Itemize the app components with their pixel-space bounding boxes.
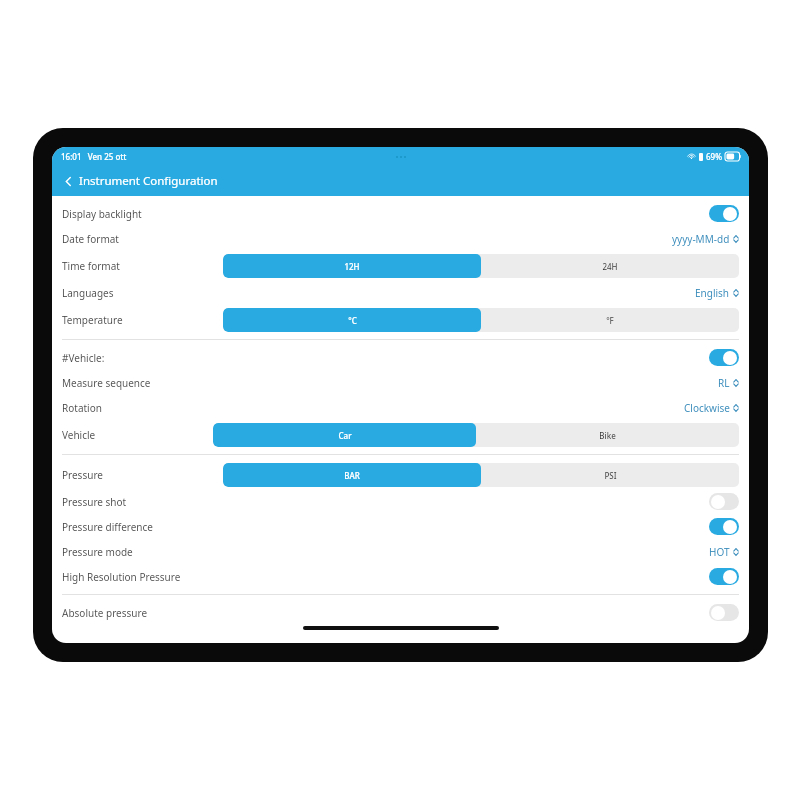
staticText: Measure sequence <box>62 376 151 390</box>
button[interactable]: Pressure shot <box>52 489 749 514</box>
staticText: Absolute pressure <box>62 606 148 620</box>
staticText: HOT <box>709 545 730 559</box>
staticText: Rotation <box>62 401 102 415</box>
button[interactable]: On <box>709 518 739 535</box>
button[interactable]: On <box>709 349 739 366</box>
button[interactable]: Bike <box>476 423 739 447</box>
button[interactable]: BAR <box>223 463 481 487</box>
staticText: °F <box>606 315 614 326</box>
button[interactable]: 12H <box>223 254 481 278</box>
staticText: Clockwise <box>684 401 730 415</box>
button[interactable]: On <box>709 205 739 222</box>
staticText: Pressure shot <box>62 495 127 509</box>
button[interactable]: Pressure mode <box>52 539 749 564</box>
button[interactable]: Car <box>213 423 476 447</box>
staticText: Instrument Configuration <box>79 173 218 189</box>
button[interactable]: Languages <box>52 280 749 305</box>
button[interactable]: Measure sequence <box>52 370 749 395</box>
button[interactable]: °C <box>223 308 481 332</box>
button[interactable]: Absolute pressure <box>52 600 749 625</box>
button[interactable]: High Resolution Pressure <box>52 564 749 589</box>
staticText: Pressure difference <box>62 520 153 534</box>
staticText: yyyy-MM-dd <box>672 232 730 246</box>
staticText: Temperature <box>62 313 123 327</box>
staticText: Time format <box>62 259 120 273</box>
button[interactable]: Display backlight <box>52 201 749 226</box>
staticText: PSI <box>604 470 617 481</box>
button[interactable]: Rotation <box>52 395 749 420</box>
staticText: 24H <box>602 261 618 272</box>
staticText: Display backlight <box>62 207 142 221</box>
staticText: English <box>695 286 730 300</box>
button[interactable]: Pressure difference <box>52 514 749 539</box>
staticText: Pressure mode <box>62 545 133 559</box>
staticText: Date format <box>62 232 119 246</box>
button[interactable]: On <box>709 568 739 585</box>
button[interactable]: PSI <box>481 463 739 487</box>
button[interactable]: #Vehicle: <box>52 345 749 370</box>
button[interactable]: 24H <box>481 254 739 278</box>
button[interactable]: °F <box>481 308 739 332</box>
staticText: Pressure <box>62 468 103 482</box>
staticText: RL <box>718 376 730 390</box>
button[interactable]: Off <box>709 604 739 621</box>
staticText: Vehicle <box>62 428 96 442</box>
button[interactable]: Off <box>709 493 739 510</box>
button[interactable]: Back <box>59 172 77 190</box>
staticText: Languages <box>62 286 114 300</box>
staticText: 12H <box>344 261 360 272</box>
staticText: #Vehicle: <box>62 351 105 365</box>
staticText: Bike <box>599 430 616 441</box>
staticText: High Resolution Pressure <box>62 570 181 584</box>
staticText: BAR <box>344 470 360 481</box>
button[interactable]: Date format <box>52 226 749 251</box>
staticText: °C <box>348 315 357 326</box>
staticText: Car <box>338 430 352 441</box>
staticText: 16:01 Ven 25 ott <box>61 151 127 162</box>
staticText: 69% <box>706 151 722 162</box>
